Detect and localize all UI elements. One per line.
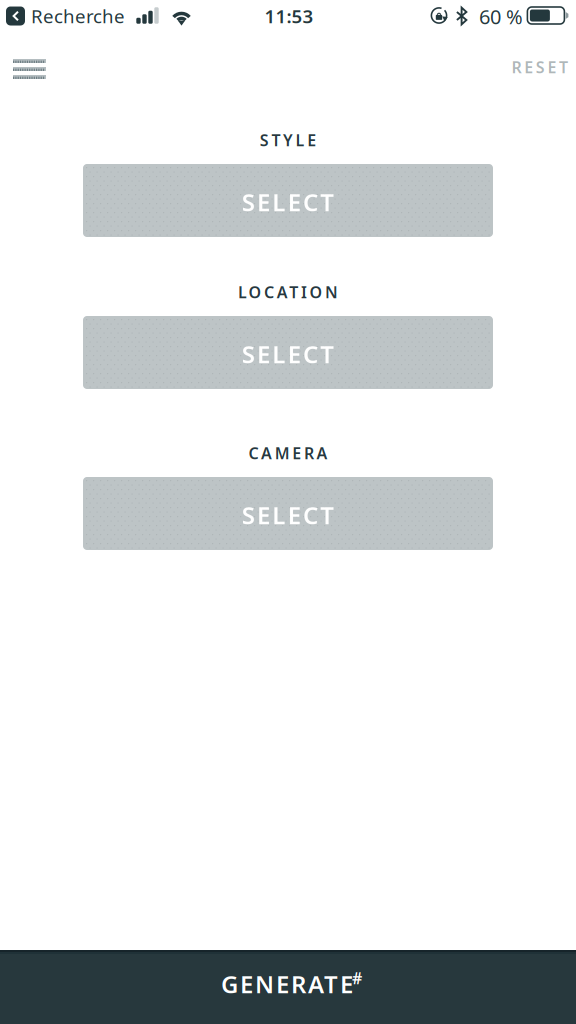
- button[interactable]: GENERATE: [0, 950, 576, 1024]
- staticText: SELECT: [242, 186, 334, 218]
- staticText: Recherche: [31, 4, 125, 28]
- staticText: STYLE: [260, 129, 316, 151]
- staticText: SELECT: [242, 338, 334, 370]
- staticText: 60 %: [479, 3, 523, 30]
- button[interactable]: SELECT: [83, 164, 493, 237]
- button[interactable]: Menu: [0, 45, 60, 91]
- staticText: LOCATION: [238, 281, 338, 303]
- staticText: 11:53: [264, 4, 313, 28]
- button[interactable]: SELECT: [83, 316, 493, 389]
- button[interactable]: RESET: [458, 46, 576, 88]
- staticText: SELECT: [242, 499, 334, 531]
- staticText: #: [352, 967, 362, 989]
- staticText: CAMERA: [248, 442, 327, 464]
- staticText: RESET: [512, 56, 568, 78]
- staticText: GENERATE: [221, 968, 353, 1000]
- button[interactable]: SELECT: [83, 477, 493, 550]
